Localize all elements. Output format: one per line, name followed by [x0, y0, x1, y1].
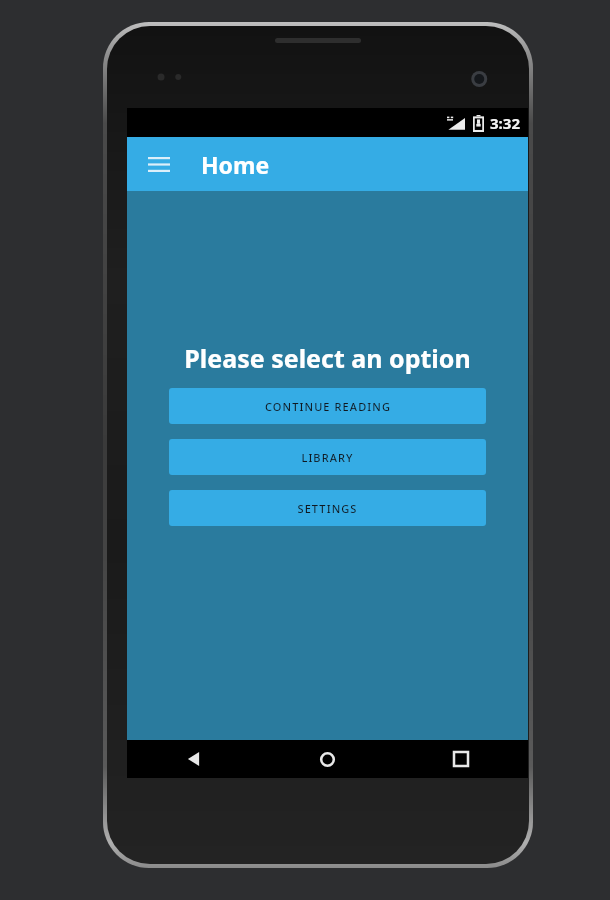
- staticText: SETTINGS: [297, 501, 358, 516]
- button[interactable]: LIBRARY: [169, 439, 486, 475]
- button[interactable]: CONTINUE READING: [169, 388, 486, 424]
- staticText: Please select an option: [184, 341, 471, 375]
- staticText: Home: [201, 149, 270, 180]
- button[interactable]: Home: [260, 740, 394, 778]
- staticText: CONTINUE READING: [265, 399, 391, 414]
- button[interactable]: Recent apps: [394, 740, 528, 778]
- staticText: 3:32: [490, 113, 520, 133]
- staticText: LIBRARY: [301, 450, 354, 465]
- button[interactable]: Back: [127, 740, 260, 778]
- button[interactable]: Open navigation drawer: [139, 144, 179, 184]
- button[interactable]: SETTINGS: [169, 490, 486, 526]
